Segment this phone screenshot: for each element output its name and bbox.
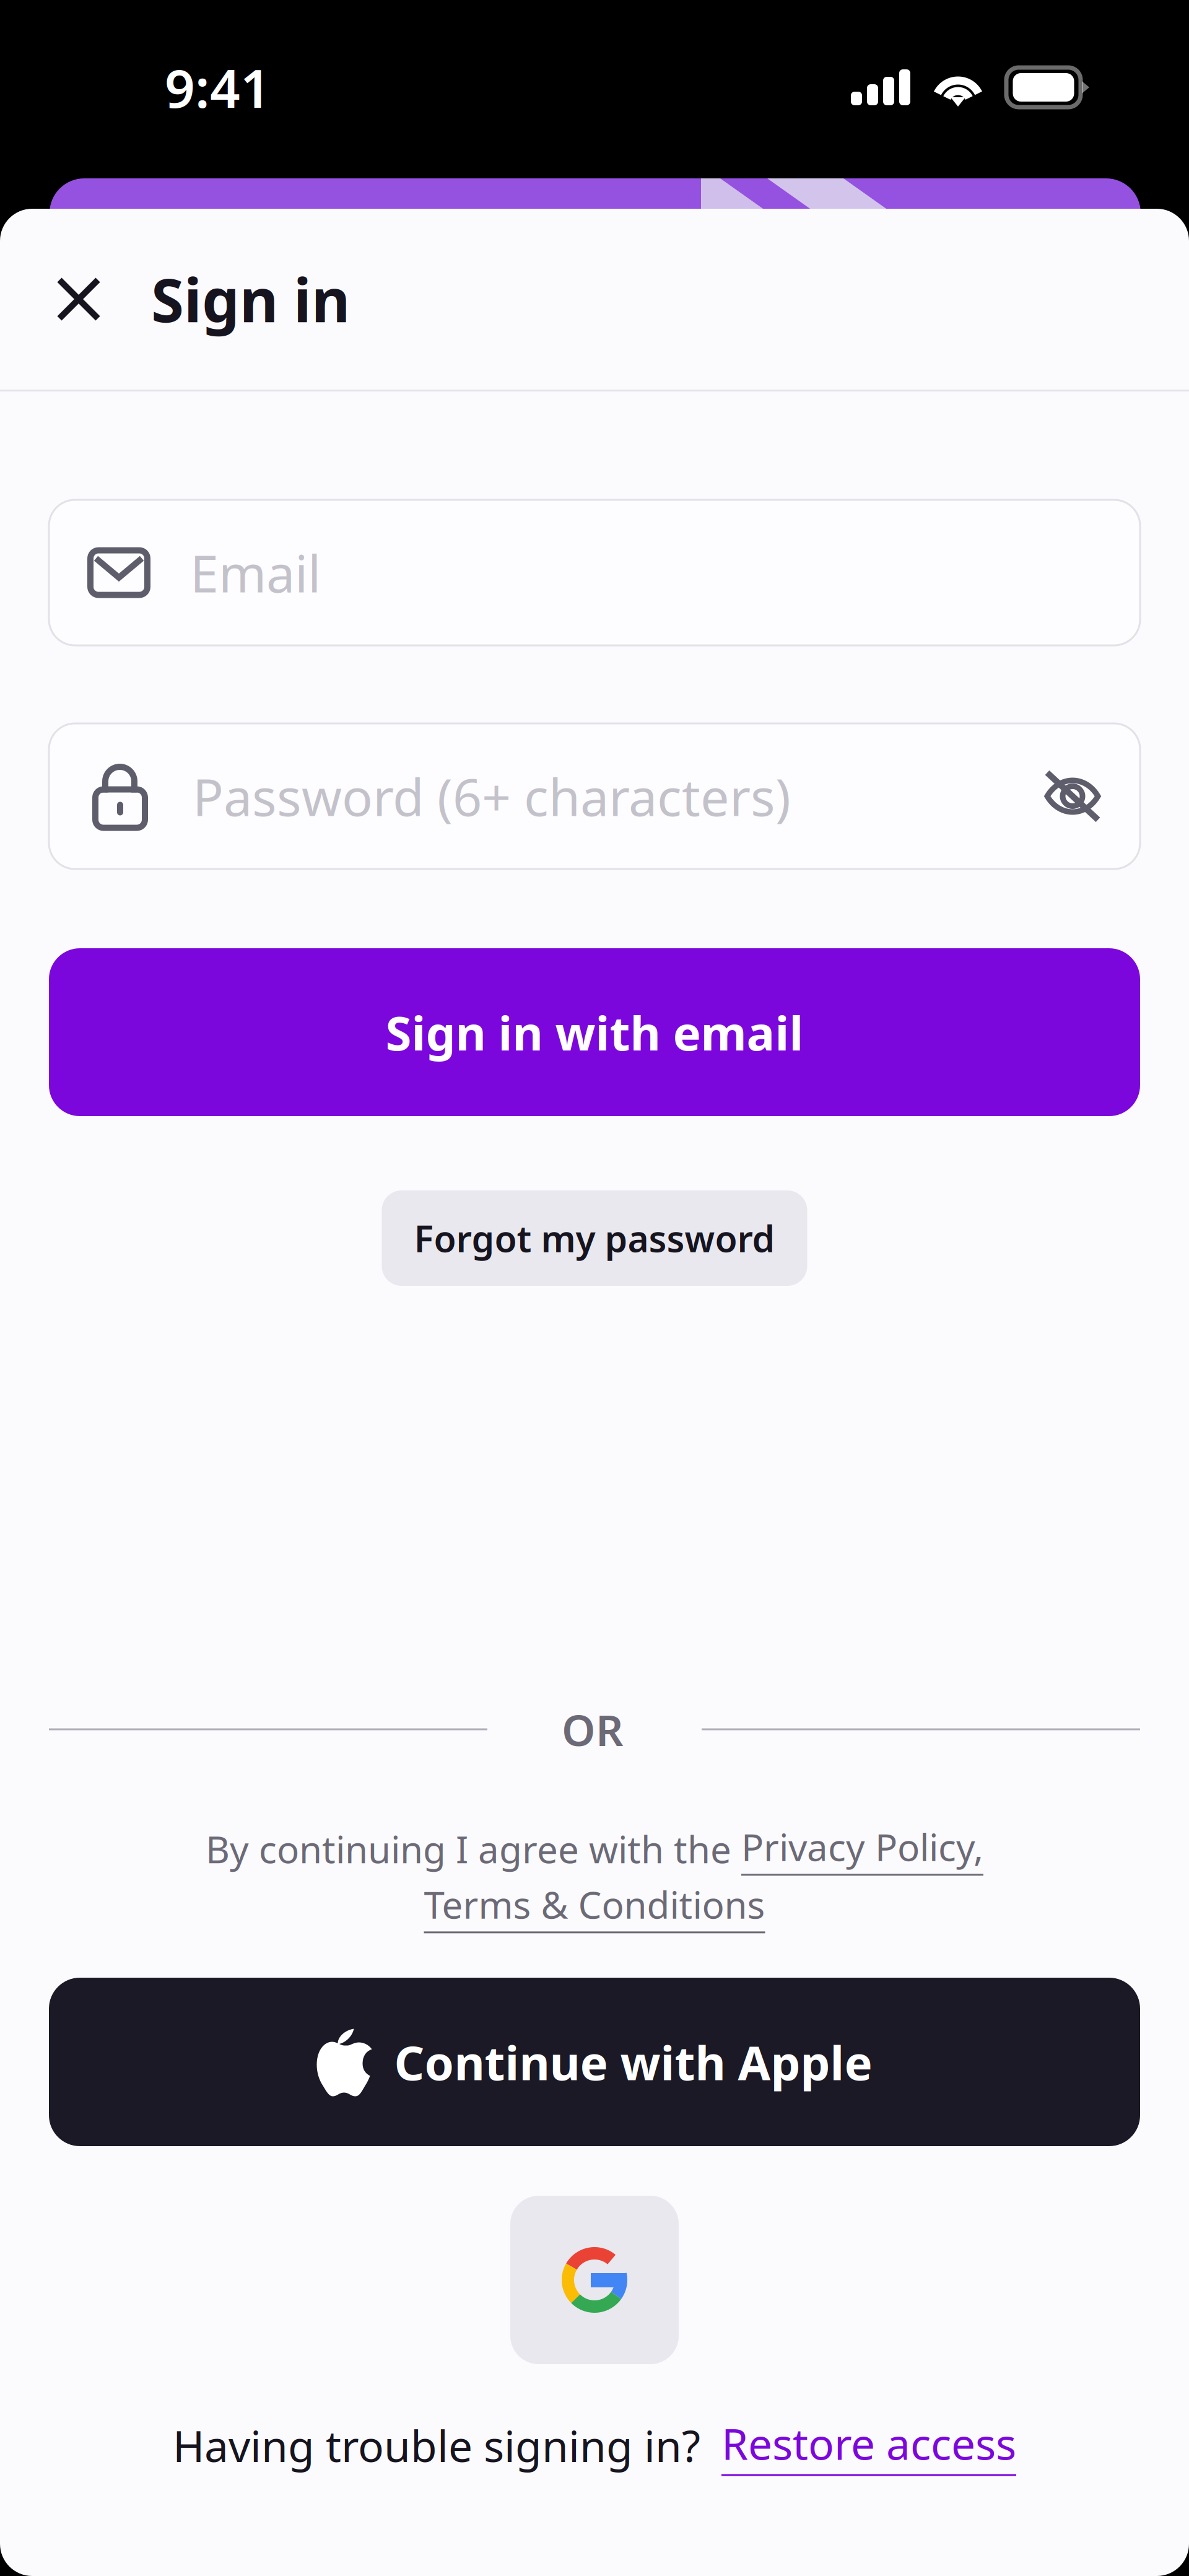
button[interactable]: Sign in with email [0, 948, 1189, 1116]
button[interactable]: Continue with Google [510, 2196, 679, 2364]
button[interactable]: Privacy Policy, [741, 1822, 983, 1876]
staticText: Terms & Conditions [424, 1880, 765, 1929]
staticText: Restore access [721, 2415, 1016, 2472]
staticText: Privacy Policy, [741, 1822, 983, 1871]
staticText: Continue with Apple [394, 2031, 872, 2093]
staticText: Email [190, 539, 321, 607]
button[interactable]: Continue with Apple [0, 1978, 1189, 2146]
staticText: Password (6+ characters) [193, 762, 791, 830]
button[interactable]: Forgot my password [382, 1190, 807, 1286]
staticText: 9:41 [165, 52, 271, 122]
button[interactable]: Restore access [721, 2414, 1016, 2476]
button[interactable]: Terms & Conditions [424, 1882, 765, 1931]
button[interactable]: Close [35, 255, 123, 343]
staticText: By continuing I agree with the [206, 1824, 741, 1874]
staticText: Sign in [151, 260, 350, 339]
staticText: OR [562, 1701, 624, 1758]
staticText: Sign in with email [385, 1001, 804, 1063]
staticText: Forgot my password [414, 1214, 775, 1262]
button[interactable]: Show password [1026, 750, 1119, 843]
staticText: Having trouble signing in? [173, 2417, 700, 2474]
